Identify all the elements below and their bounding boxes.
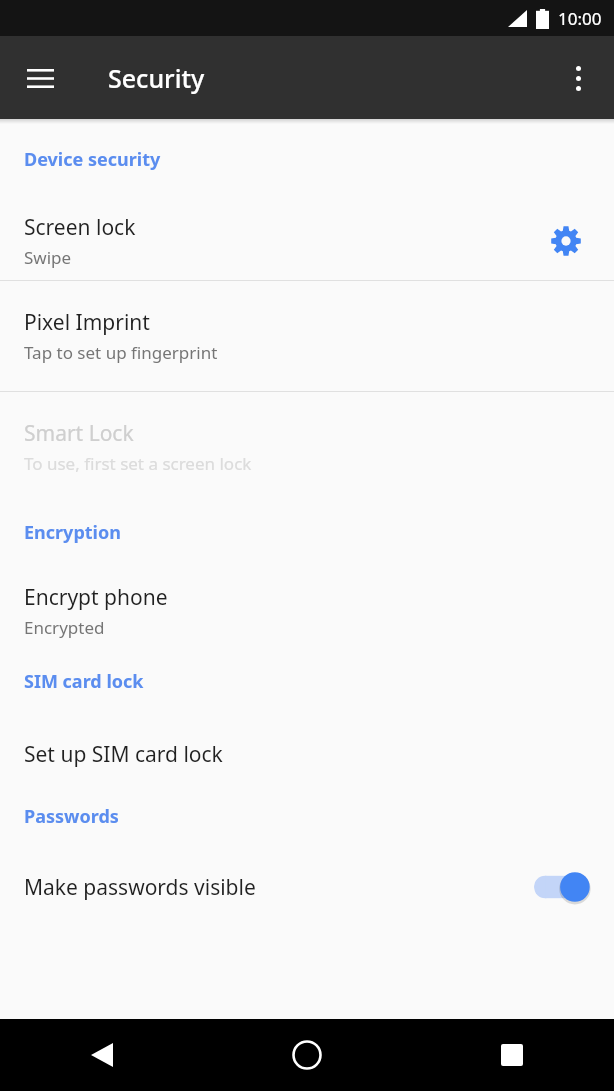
- staticText: Tap to set up fingerprint: [24, 341, 218, 364]
- staticText: Pixel Imprint: [24, 308, 150, 337]
- staticText: Smart Lock: [24, 419, 134, 448]
- button[interactable]: Pixel Imprint: [0, 281, 614, 391]
- staticText: Passwords: [24, 804, 119, 829]
- button[interactable]: Open navigation drawer: [12, 50, 68, 106]
- button[interactable]: Screen lock: [0, 202, 614, 280]
- staticText: SIM card lock: [24, 669, 144, 694]
- button[interactable]: Smart Lock: [0, 392, 614, 502]
- staticText: To use, first set a screen lock: [24, 452, 252, 475]
- staticText: Device security: [24, 147, 161, 172]
- staticText: Encrypt phone: [24, 583, 168, 612]
- staticText: Swipe: [24, 246, 72, 269]
- staticText: Make passwords visible: [24, 873, 534, 902]
- button[interactable]: Set up SIM card lock: [0, 728, 614, 780]
- staticText: Screen lock: [24, 213, 136, 242]
- button[interactable]: Back: [0, 1019, 204, 1091]
- staticText: 10:00: [558, 7, 602, 30]
- staticText: Security: [108, 61, 205, 95]
- staticText: Set up SIM card lock: [24, 740, 223, 769]
- button[interactable]: Make passwords visible: [0, 859, 614, 915]
- button[interactable]: Screen lock settings: [542, 217, 590, 265]
- button[interactable]: Make passwords visible toggle: [534, 867, 596, 907]
- button[interactable]: Encrypt phone: [0, 575, 614, 647]
- button[interactable]: Home: [204, 1019, 409, 1091]
- staticText: Encryption: [24, 520, 121, 545]
- button[interactable]: Recent apps: [409, 1019, 614, 1091]
- staticText: Encrypted: [24, 616, 105, 639]
- button[interactable]: More options: [550, 50, 606, 106]
